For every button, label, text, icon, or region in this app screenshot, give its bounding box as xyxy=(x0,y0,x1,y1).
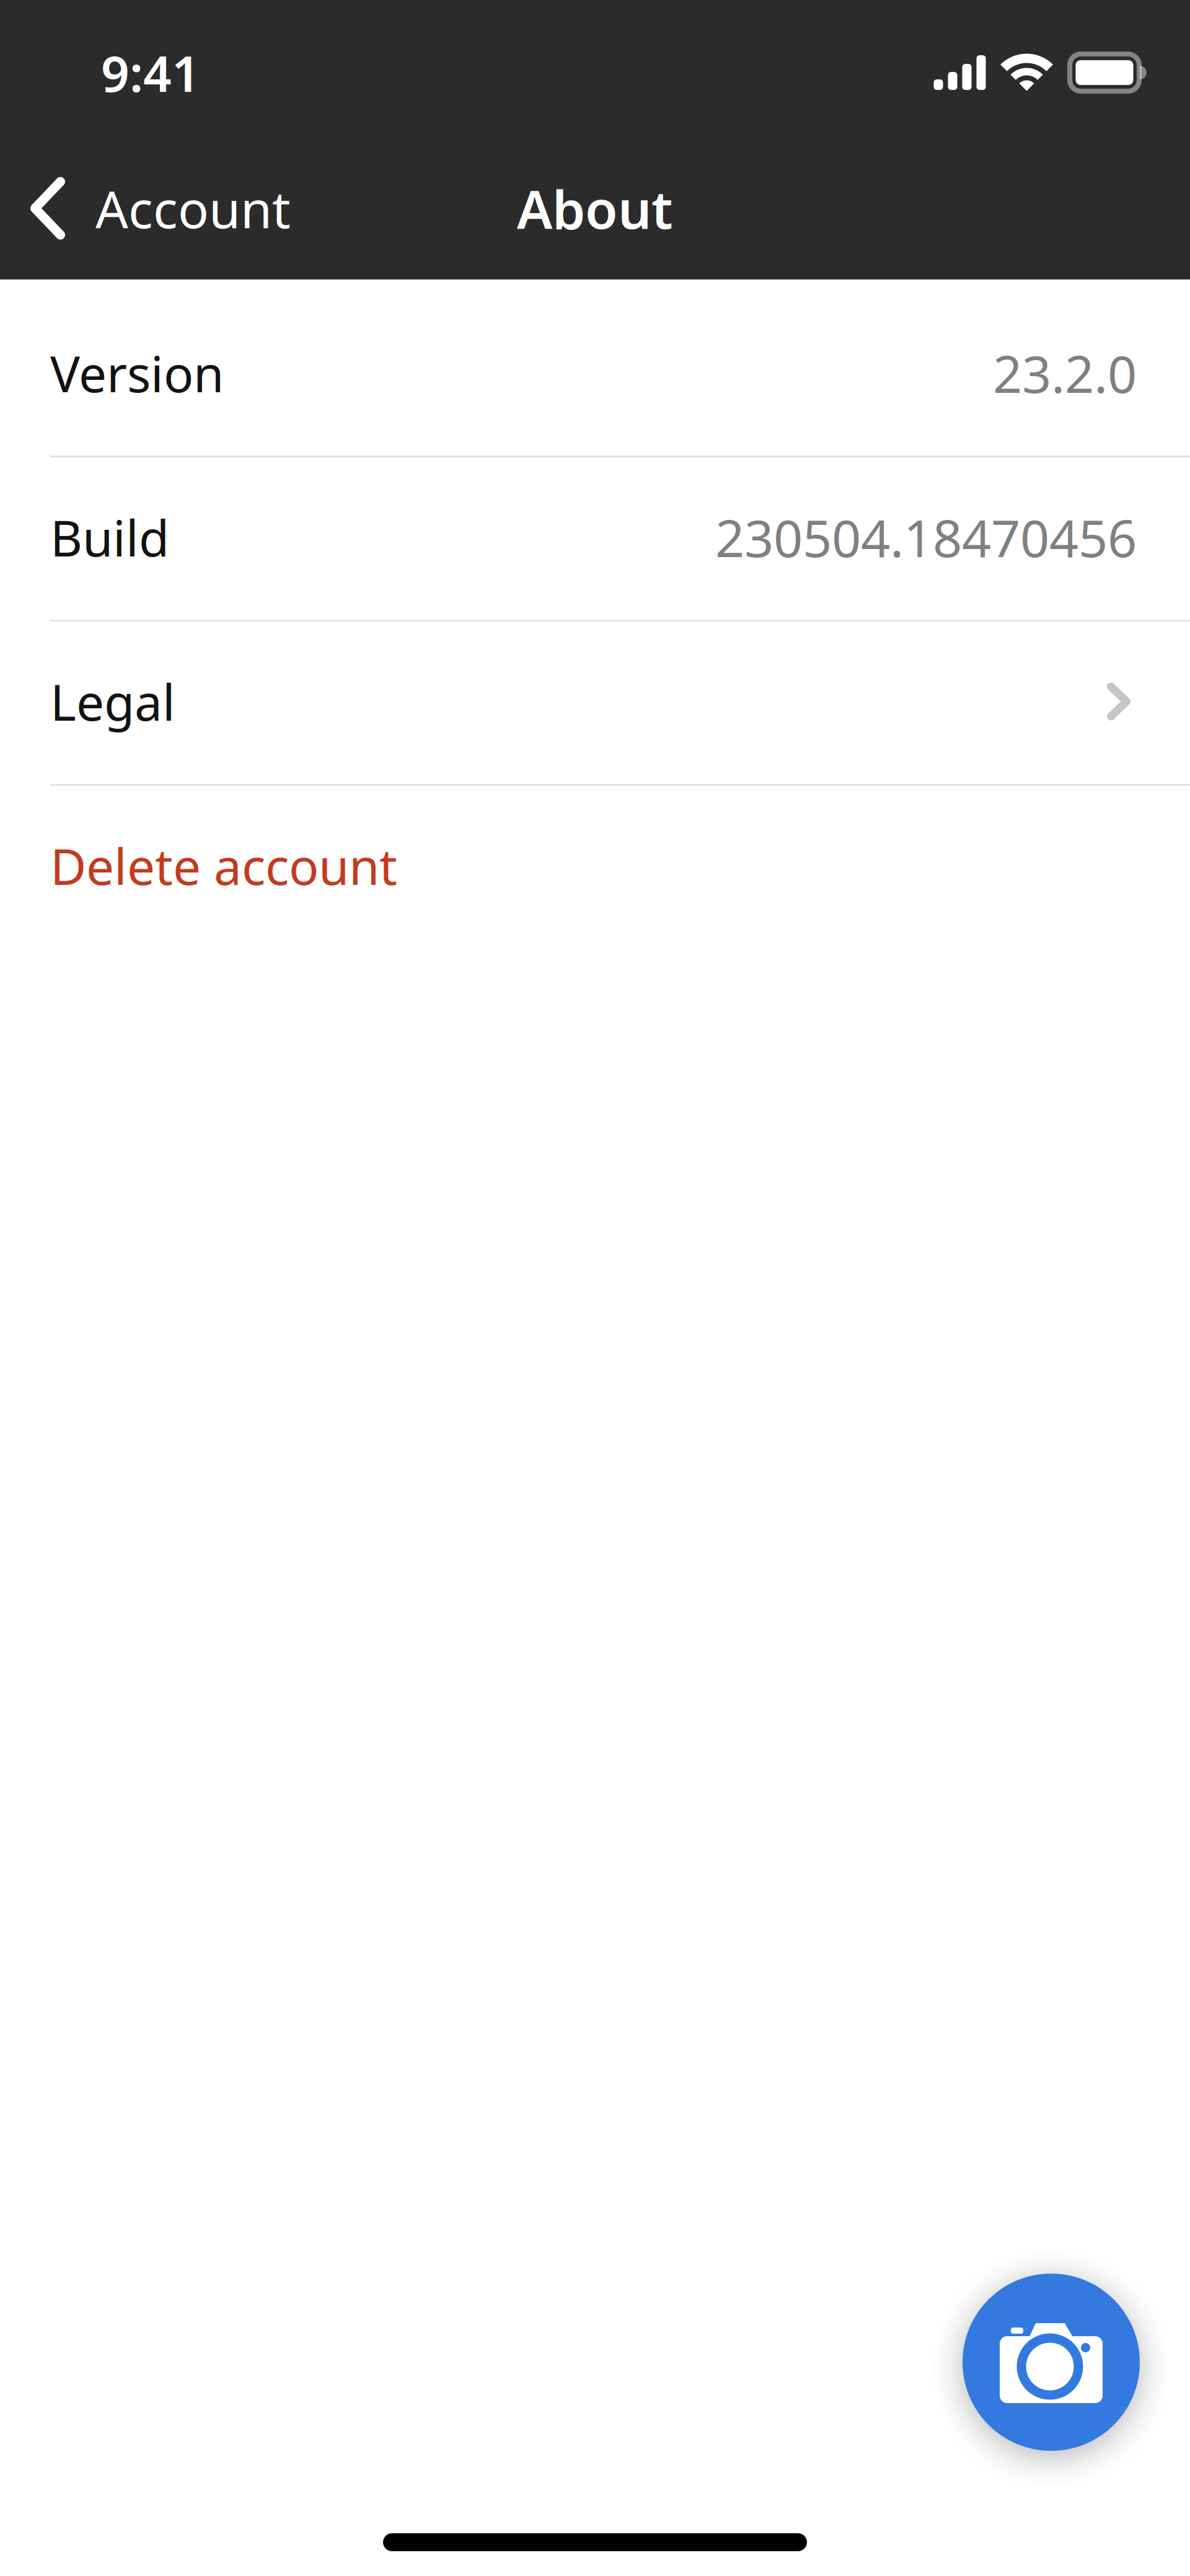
button[interactable]: Legal xyxy=(0,622,1190,784)
staticText: Account xyxy=(95,174,291,242)
staticText: Build xyxy=(50,504,169,570)
staticText: 9:41 xyxy=(101,40,200,105)
button[interactable]: Account xyxy=(0,149,309,267)
staticText: About xyxy=(517,173,673,243)
button[interactable]: Build xyxy=(0,457,1190,620)
staticText: Delete account xyxy=(50,833,397,899)
button[interactable]: Delete account xyxy=(0,786,1190,948)
button[interactable]: Version xyxy=(0,293,1190,455)
staticText: 23.2.0 xyxy=(993,339,1137,407)
staticText: Legal xyxy=(50,669,175,734)
staticText: 230504.18470456 xyxy=(715,503,1137,571)
staticText: Version xyxy=(50,340,224,406)
button[interactable]: Take photo xyxy=(963,2274,1140,2451)
